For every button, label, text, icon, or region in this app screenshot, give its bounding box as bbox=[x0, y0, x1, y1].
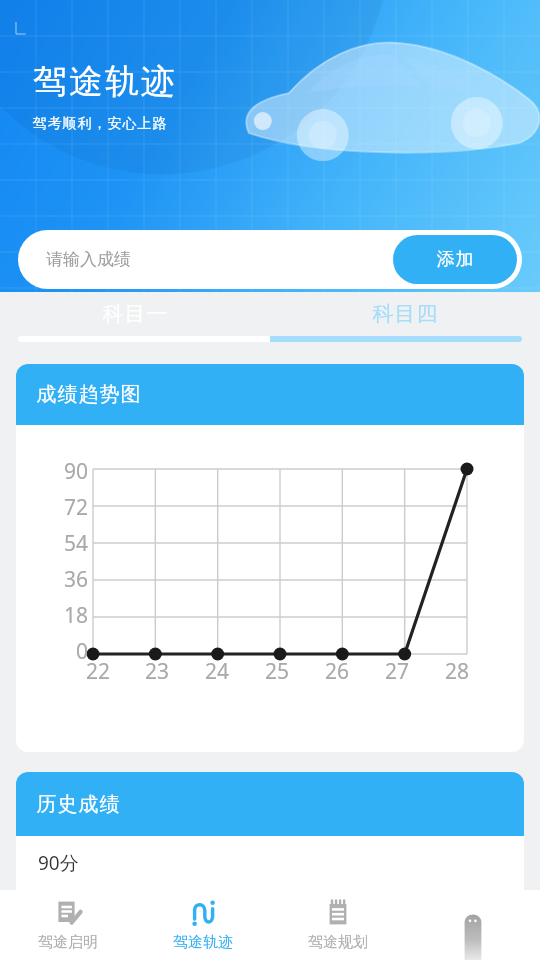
button[interactable]: 请输入成绩 bbox=[24, 235, 393, 284]
staticText: 科目四 bbox=[372, 301, 438, 327]
staticText: 90 bbox=[63, 457, 88, 486]
staticText: 90分 bbox=[38, 850, 79, 876]
button[interactable]: 添加 bbox=[393, 235, 517, 284]
staticText: 18 bbox=[63, 601, 88, 630]
staticText: 驾途轨迹 bbox=[173, 933, 233, 952]
button[interactable]: 科目四 bbox=[270, 292, 540, 336]
staticText: 26 bbox=[325, 657, 350, 686]
staticText: 驾途规划 bbox=[308, 933, 368, 952]
staticText: 24 bbox=[205, 657, 230, 686]
staticText: 历史成绩 bbox=[36, 792, 120, 817]
staticText: 36 bbox=[63, 565, 88, 594]
staticText: 驾途轨迹 bbox=[32, 60, 176, 103]
staticText: 22 bbox=[86, 657, 111, 686]
staticText: 54 bbox=[63, 529, 88, 558]
button[interactable]: 驾途规划 bbox=[270, 890, 405, 960]
staticText: 28 bbox=[445, 657, 470, 686]
staticText: 23 bbox=[145, 657, 170, 686]
staticText: 成绩趋势图 bbox=[36, 382, 141, 407]
staticText: 72 bbox=[63, 493, 88, 522]
staticText: 驾考顺利，安心上路 bbox=[32, 115, 167, 133]
button[interactable]: 驾途轨迹 bbox=[135, 890, 270, 960]
staticText: 请输入成绩 bbox=[46, 249, 131, 270]
staticText: 驾途启明 bbox=[38, 933, 98, 952]
button[interactable]: 驾途启明 bbox=[0, 890, 135, 960]
staticText: 添加 bbox=[436, 248, 474, 271]
staticText: 27 bbox=[385, 657, 410, 686]
staticText: 25 bbox=[265, 657, 290, 686]
button[interactable]: 我的 bbox=[405, 890, 540, 960]
staticText: 0 bbox=[75, 637, 88, 666]
staticText: 科目一 bbox=[102, 301, 168, 327]
